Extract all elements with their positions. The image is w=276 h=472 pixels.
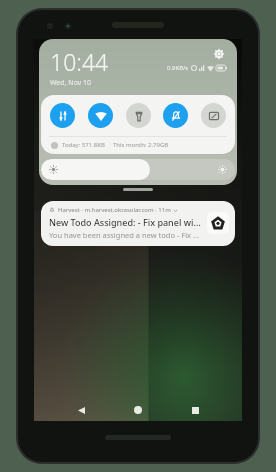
button[interactable]: Recents — [185, 400, 205, 420]
button[interactable] — [41, 159, 235, 180]
staticText: Harvest · m.harvest.okrasolar.com · 11m — [58, 206, 171, 214]
button[interactable]: Harvest · m.harvest.okrasolar.com · 11m — [41, 201, 235, 246]
button[interactable]: Screenshot — [201, 103, 226, 128]
staticText: This month: 2.79GB — [113, 141, 169, 149]
staticText: Wed, Nov 10 — [50, 78, 92, 88]
button[interactable]: Wi-Fi — [88, 103, 113, 128]
staticText: You have been assigned a new todo - Fix … — [49, 230, 200, 240]
staticText: 0.9KB/s — [167, 64, 189, 72]
button[interactable]: Do not disturb — [163, 103, 188, 128]
button[interactable]: Settings — [211, 46, 227, 62]
staticText: 10:44 — [50, 46, 109, 77]
button[interactable] — [123, 188, 153, 191]
button[interactable]: Home — [128, 400, 148, 420]
button[interactable]: Back — [71, 400, 91, 420]
staticText: Today: 571.8KB — [62, 141, 105, 149]
button[interactable]: Flashlight — [126, 103, 151, 128]
staticText: New Todo Assigned: - Fix panel wiring.. — [49, 216, 202, 228]
button[interactable]: Mobile data — [50, 103, 75, 128]
